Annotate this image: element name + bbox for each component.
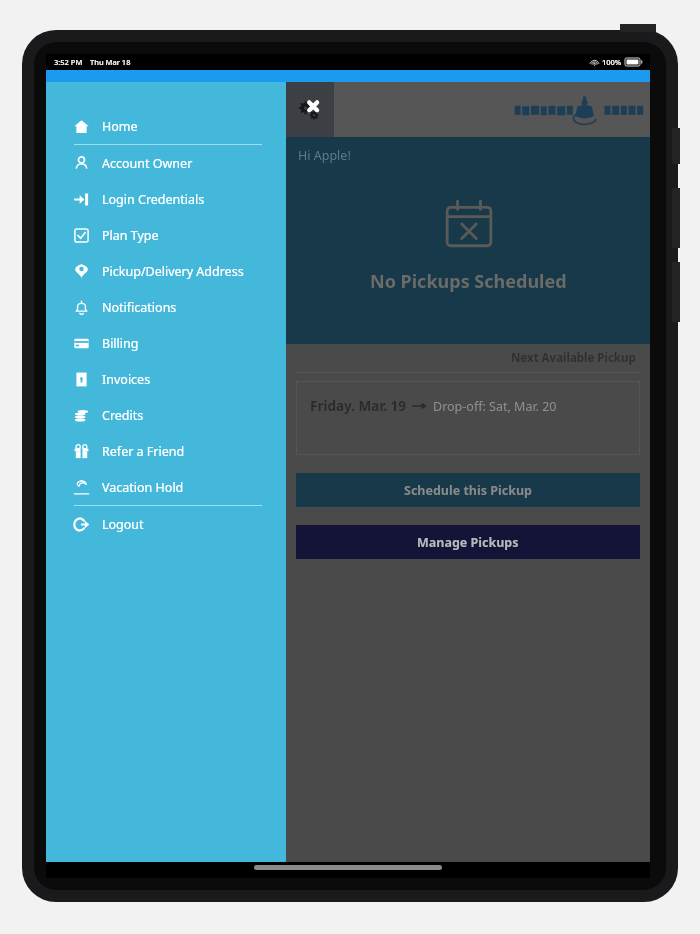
button[interactable]: Logout bbox=[46, 506, 286, 542]
button[interactable]: Friday. Mar. 19 bbox=[296, 381, 640, 455]
button[interactable]: Pickup/Delivery Address bbox=[46, 253, 286, 289]
staticText: Pickup/Delivery Address bbox=[102, 263, 244, 280]
staticText: Drop-off: Sat, Mar. 20 bbox=[433, 398, 557, 415]
staticText: Hi Apple! bbox=[298, 147, 351, 164]
button[interactable]: Credits bbox=[46, 397, 286, 433]
button[interactable]: Account Owner bbox=[46, 145, 286, 181]
staticText: 100% bbox=[602, 57, 622, 67]
staticText: Manage Pickups bbox=[417, 534, 519, 551]
staticText: Friday. Mar. 19 bbox=[310, 397, 407, 415]
staticText: Notifications bbox=[102, 299, 177, 316]
staticText: Account Owner bbox=[102, 155, 193, 172]
staticText: Plan Type bbox=[102, 227, 159, 244]
staticText: Next Available Pickup bbox=[511, 350, 636, 366]
staticText: 3:52 PM bbox=[54, 57, 83, 67]
staticText: Thu Mar 18 bbox=[90, 57, 131, 67]
staticText: Home bbox=[102, 118, 138, 135]
button[interactable]: Vacation Hold bbox=[46, 469, 286, 505]
button[interactable]: Refer a Friend bbox=[46, 433, 286, 469]
staticText: Logout bbox=[102, 516, 144, 533]
button[interactable]: Login Credentials bbox=[46, 181, 286, 217]
staticText: Login Credentials bbox=[102, 191, 205, 208]
staticText: Schedule this Pickup bbox=[404, 482, 532, 499]
staticText: Refer a Friend bbox=[102, 443, 185, 460]
staticText: Credits bbox=[102, 407, 144, 424]
staticText: Vacation Hold bbox=[102, 479, 184, 496]
button[interactable]: Schedule this Pickup bbox=[296, 473, 640, 507]
button[interactable]: Home bbox=[46, 108, 286, 144]
staticText: Billing bbox=[102, 335, 139, 352]
button[interactable]: Invoices bbox=[46, 361, 286, 397]
staticText: No Pickups Scheduled bbox=[370, 269, 567, 294]
button[interactable]: Manage Pickups bbox=[296, 525, 640, 559]
button[interactable]: Close settings bbox=[286, 82, 334, 137]
button[interactable]: Billing bbox=[46, 325, 286, 361]
button[interactable]: Notifications bbox=[46, 289, 286, 325]
button[interactable]: Plan Type bbox=[46, 217, 286, 253]
staticText: Invoices bbox=[102, 371, 151, 388]
